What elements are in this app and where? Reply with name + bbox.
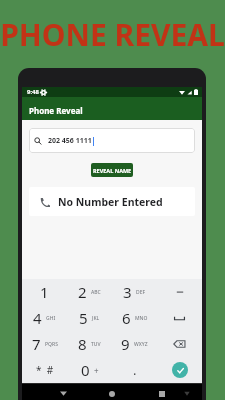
staticText: ABC: [91, 289, 101, 296]
staticText: .: [133, 361, 137, 379]
button[interactable]: 0: [67, 357, 112, 383]
staticText: 1: [40, 282, 49, 302]
button[interactable]: Space: [157, 305, 202, 331]
staticText: TUV: [91, 341, 101, 348]
button[interactable]: .: [112, 357, 157, 383]
staticText: 0: [81, 360, 90, 380]
button[interactable]: Back: [54, 383, 72, 400]
button[interactable]: Delete: [157, 331, 202, 357]
button[interactable]: 7: [22, 331, 67, 357]
staticText: 3: [123, 282, 132, 302]
button[interactable]: 3: [112, 279, 157, 305]
button[interactable]: 5: [67, 305, 112, 331]
button[interactable]: 2: [67, 279, 112, 305]
staticText: * #: [36, 363, 54, 377]
staticText: REVEAL NAME: [93, 167, 132, 174]
button[interactable]: 4: [22, 305, 67, 331]
button[interactable]: Hide keyboard: [179, 383, 195, 400]
staticText: GHI: [46, 315, 56, 322]
button[interactable]: Home: [103, 383, 121, 400]
staticText: WXYZ: [134, 341, 148, 348]
button[interactable]: Dash: [157, 279, 202, 305]
other: Dash: [176, 288, 184, 296]
button[interactable]: 6: [112, 305, 157, 331]
button[interactable]: Enter: [157, 357, 202, 383]
staticText: 7: [32, 334, 41, 354]
staticText: 9:48: [27, 88, 39, 96]
staticText: 2: [78, 282, 87, 302]
staticText: Phone Reveal: [29, 105, 83, 116]
staticText: 5: [79, 308, 88, 328]
staticText: 4: [33, 308, 42, 328]
staticText: 8: [78, 334, 87, 354]
button[interactable]: Recents: [153, 383, 171, 400]
staticText: +: [94, 365, 99, 376]
button[interactable]: 1: [22, 279, 67, 305]
staticText: 6: [122, 308, 131, 328]
staticText: JKL: [92, 315, 100, 322]
staticText: MNO: [135, 315, 148, 322]
button[interactable]: Enter: [172, 362, 188, 378]
staticText: PQRS: [45, 341, 58, 348]
staticText: 202 456 1111: [48, 136, 92, 146]
staticText: PHONE REVEAL: [0, 14, 225, 55]
button[interactable]: * #: [22, 357, 67, 383]
staticText: 9: [121, 334, 130, 354]
button[interactable]: REVEAL NAME: [91, 163, 133, 177]
button[interactable]: 202 456 1111: [29, 128, 195, 153]
other: Space: [174, 314, 185, 322]
staticText: DEF: [136, 289, 146, 296]
staticText: No Number Entered: [58, 195, 163, 209]
button[interactable]: 9: [112, 331, 157, 357]
other: Delete: [173, 339, 186, 349]
button[interactable]: 8: [67, 331, 112, 357]
button[interactable]: No Number Entered: [29, 187, 195, 216]
